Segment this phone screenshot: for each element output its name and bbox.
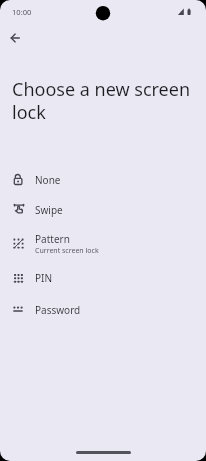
- staticText: PIN: [35, 271, 53, 285]
- button[interactable]: Swipe: [0, 194, 206, 224]
- staticText: Choose a new screen lock: [12, 77, 200, 124]
- staticText: None: [35, 173, 61, 187]
- button[interactable]: Pattern: [0, 226, 206, 260]
- button[interactable]: Password: [0, 294, 206, 324]
- button[interactable]: Back: [1, 24, 29, 52]
- staticText: 10:00: [12, 7, 32, 17]
- staticText: Swipe: [35, 203, 63, 217]
- button[interactable]: PIN: [0, 262, 206, 292]
- staticText: Current screen lock: [35, 246, 99, 256]
- staticText: Password: [35, 303, 81, 317]
- button[interactable]: None: [0, 164, 206, 194]
- staticText: Pattern: [35, 232, 70, 246]
